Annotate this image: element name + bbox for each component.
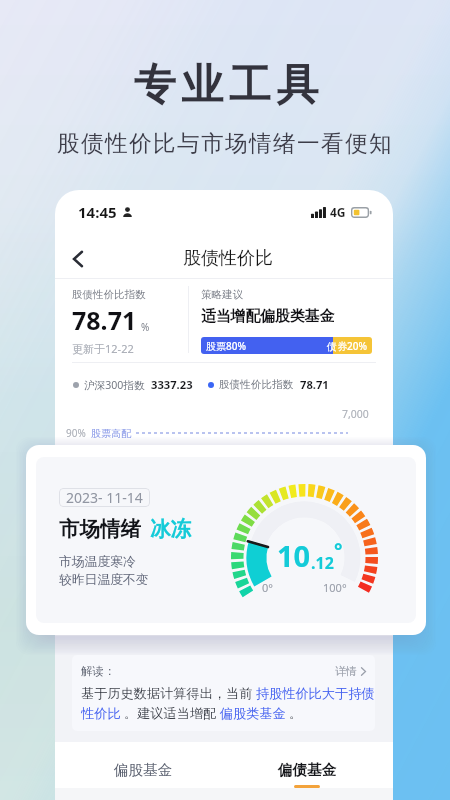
- staticText: 市场温度寒冷 较昨日温度不变: [59, 554, 149, 588]
- staticText: 详情: [335, 664, 357, 678]
- staticText: 偏债基金: [278, 761, 336, 779]
- button[interactable]: 偏债基金: [234, 746, 379, 792]
- staticText: 10: [277, 536, 311, 575]
- staticText: 0°: [262, 580, 273, 595]
- staticText: 冰冻: [150, 516, 191, 542]
- staticText: 专业工具: [4, 59, 450, 112]
- staticText: 2023- 11-14: [66, 488, 143, 507]
- staticText: 债券20%: [327, 339, 367, 353]
- staticText: °: [334, 537, 343, 564]
- staticText: .12: [311, 552, 334, 574]
- staticText: 股债性价比指数: [219, 378, 294, 391]
- staticText: 偏股基金: [114, 761, 172, 779]
- staticText: 3337.23: [151, 377, 193, 392]
- staticText: 7,000: [342, 407, 369, 421]
- staticText: 股债性价比指数: [72, 288, 146, 301]
- staticText: 4G: [330, 204, 346, 220]
- staticText: 基于历史数据计算得出，当前 持股性价比大于持债性价比 。建议适当增配 偏股类基金…: [81, 684, 375, 721]
- staticText: 股债性价比: [59, 247, 393, 270]
- staticText: 股票高配: [91, 427, 131, 440]
- staticText: 100°: [323, 580, 347, 595]
- button[interactable]: Back: [62, 243, 94, 275]
- button[interactable]: 偏股基金: [70, 746, 215, 792]
- staticText: 解读：: [81, 664, 116, 678]
- staticText: 股票80%: [206, 339, 246, 353]
- staticText: 策略建议: [201, 288, 243, 301]
- staticText: 适当增配偏股类基金: [201, 307, 335, 326]
- button[interactable]: 解读：: [72, 655, 375, 731]
- staticText: 78.71: [300, 377, 329, 392]
- staticText: 90%: [66, 426, 86, 440]
- staticText: 更新于12-22: [72, 341, 134, 356]
- staticText: 78.71: [72, 303, 137, 337]
- staticText: 沪深300指数: [84, 378, 145, 392]
- staticText: 14:45: [78, 202, 117, 222]
- staticText: 股债性价比与市场情绪一看便知: [0, 129, 450, 157]
- staticText: %: [141, 320, 150, 334]
- staticText: 市场情绪: [59, 516, 141, 542]
